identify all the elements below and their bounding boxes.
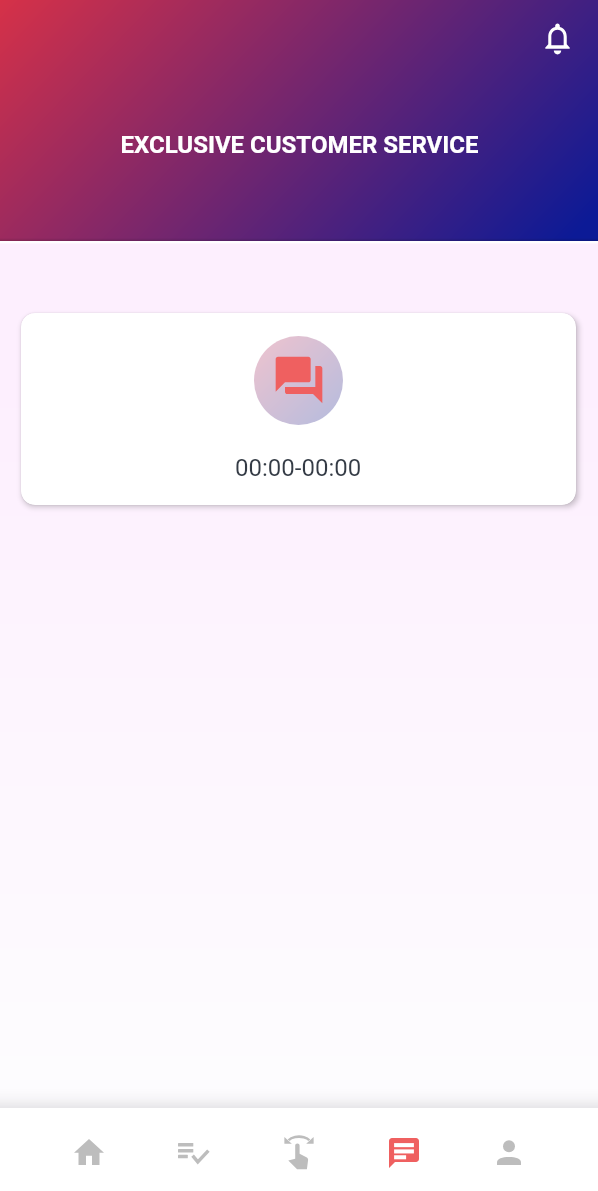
staticText: EXCLUSIVE CUSTOMER SERVICE [120,131,479,159]
button[interactable]: Home [36,1108,141,1191]
button[interactable]: Notifications [533,14,581,62]
button[interactable]: Tasks [141,1108,246,1191]
button[interactable]: Messages [351,1108,456,1191]
button[interactable]: 00:00-00:00 [21,313,576,505]
button[interactable]: Swipe [246,1108,351,1191]
staticText: 00:00-00:00 [235,454,362,482]
button[interactable]: Profile [456,1108,561,1191]
